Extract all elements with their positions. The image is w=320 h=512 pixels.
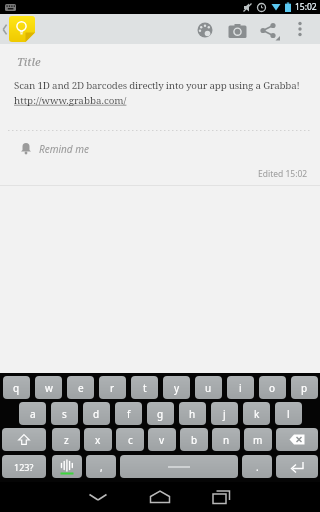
button[interactable] — [52, 455, 82, 478]
staticText: b — [191, 433, 198, 447]
button[interactable] — [276, 428, 318, 451]
button[interactable] — [9, 16, 35, 42]
button[interactable]: , — [86, 455, 116, 478]
staticText: s — [62, 407, 67, 421]
button[interactable]: y — [163, 376, 190, 399]
button[interactable] — [2, 428, 46, 451]
button[interactable]: d — [83, 402, 110, 425]
staticText: u — [205, 381, 212, 395]
staticText: Scan 1D and 2D barcodes directly into yo… — [14, 79, 300, 92]
button[interactable] — [276, 455, 318, 478]
staticText: Title — [17, 54, 41, 69]
staticText: j — [223, 407, 226, 421]
button[interactable]: p — [291, 376, 318, 399]
button[interactable]: Remind me — [20, 140, 89, 158]
staticText: w — [45, 381, 53, 395]
staticText: t — [143, 381, 147, 395]
button[interactable]: c — [116, 428, 144, 451]
button[interactable]: j — [211, 402, 238, 425]
button[interactable]: 123? — [2, 455, 46, 478]
button[interactable]: g — [147, 402, 174, 425]
staticText: d — [93, 407, 100, 421]
button[interactable]: x — [84, 428, 112, 451]
button[interactable]: n — [212, 428, 240, 451]
staticText: e — [78, 381, 84, 395]
button[interactable]: u — [195, 376, 222, 399]
staticText: n — [223, 433, 230, 447]
staticText: f — [127, 407, 131, 421]
button[interactable]: k — [243, 402, 270, 425]
staticText: v — [159, 433, 165, 447]
staticText: r — [110, 381, 115, 395]
staticText: Edited 15:02 — [258, 168, 308, 180]
button[interactable] — [260, 23, 282, 41]
button[interactable]: z — [52, 428, 80, 451]
button[interactable]: e — [67, 376, 94, 399]
staticText: q — [13, 381, 20, 395]
button[interactable] — [146, 488, 174, 506]
staticText: p — [301, 381, 308, 395]
button[interactable]: a — [19, 402, 46, 425]
staticText: . — [256, 460, 259, 474]
button[interactable]: f — [115, 402, 142, 425]
staticText: z — [64, 433, 69, 447]
staticText: , — [100, 460, 103, 474]
staticText: h — [189, 407, 196, 421]
button[interactable]: b — [180, 428, 208, 451]
button[interactable] — [228, 24, 248, 40]
button[interactable] — [84, 488, 112, 506]
staticText: Remind me — [39, 142, 89, 156]
staticText: i — [239, 381, 242, 395]
staticText: y — [174, 381, 180, 395]
button[interactable]: s — [51, 402, 78, 425]
staticText: l — [287, 407, 290, 421]
staticText: x — [95, 433, 101, 447]
staticText: http://www.grabba.com/ — [14, 94, 127, 107]
button[interactable] — [196, 22, 216, 42]
staticText: 123? — [14, 461, 34, 473]
staticText: m — [253, 433, 263, 447]
button[interactable]: o — [259, 376, 286, 399]
button[interactable] — [208, 488, 236, 506]
button[interactable]: r — [99, 376, 126, 399]
button[interactable]: m — [244, 428, 272, 451]
button[interactable]: w — [35, 376, 62, 399]
button[interactable]: v — [148, 428, 176, 451]
staticText: o — [269, 381, 276, 395]
button[interactable]: . — [242, 455, 272, 478]
button[interactable]: t — [131, 376, 158, 399]
button[interactable]: q — [3, 376, 30, 399]
button[interactable] — [292, 21, 308, 37]
button[interactable]: i — [227, 376, 254, 399]
staticText: g — [157, 407, 164, 421]
staticText: k — [254, 407, 260, 421]
staticText: a — [30, 407, 36, 421]
button[interactable] — [120, 455, 238, 478]
staticText: 15:02 — [295, 1, 317, 13]
staticText: c — [128, 433, 133, 447]
button[interactable]: l — [275, 402, 302, 425]
button[interactable]: h — [179, 402, 206, 425]
